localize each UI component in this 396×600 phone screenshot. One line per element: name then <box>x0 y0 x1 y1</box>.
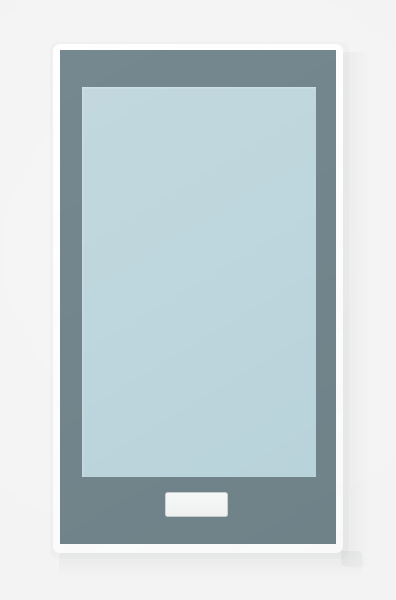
button[interactable]: Smartphone illustration <box>0 0 396 600</box>
